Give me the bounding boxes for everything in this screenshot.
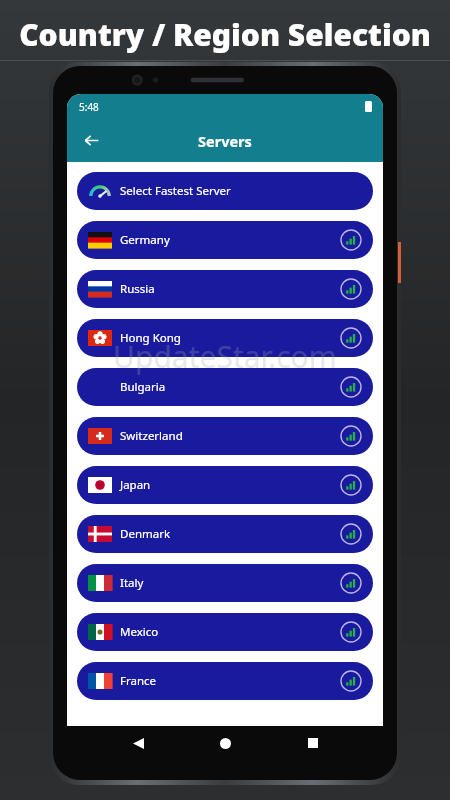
button[interactable]: Japan [77,466,373,504]
button[interactable]: Bulgaria [77,368,373,406]
button[interactable]: France [77,662,373,700]
staticText: Japan [120,477,151,493]
staticText: Select Fastest Server [120,183,231,199]
staticText: Switzerland [120,428,183,444]
button[interactable]: Russia [77,270,373,308]
staticText: Hong Kong [120,330,181,346]
button[interactable]: Denmark [77,515,373,553]
staticText: Servers [198,131,252,151]
button[interactable]: Back [75,124,107,156]
button[interactable]: Germany [77,221,373,259]
staticText: Italy [120,575,144,591]
button[interactable]: Mexico [77,613,373,651]
staticText: Russia [120,281,155,297]
button[interactable]: Switzerland [77,417,373,455]
staticText: UpdateStar.com [113,336,337,377]
staticText: Bulgaria [120,379,166,395]
staticText: Germany [120,232,170,248]
button[interactable]: Back [121,726,155,760]
button[interactable]: Italy [77,564,373,602]
staticText: 5:48 [79,100,99,114]
staticText: Denmark [120,526,171,542]
button[interactable]: Home [208,726,242,760]
staticText: Country / Region Selection [19,14,431,55]
staticText: France [120,673,157,689]
staticText: Mexico [120,624,159,640]
button[interactable]: Hong Kong [77,319,373,357]
button[interactable]: Select Fastest Server [77,172,373,210]
button[interactable]: Recent apps [296,726,330,760]
